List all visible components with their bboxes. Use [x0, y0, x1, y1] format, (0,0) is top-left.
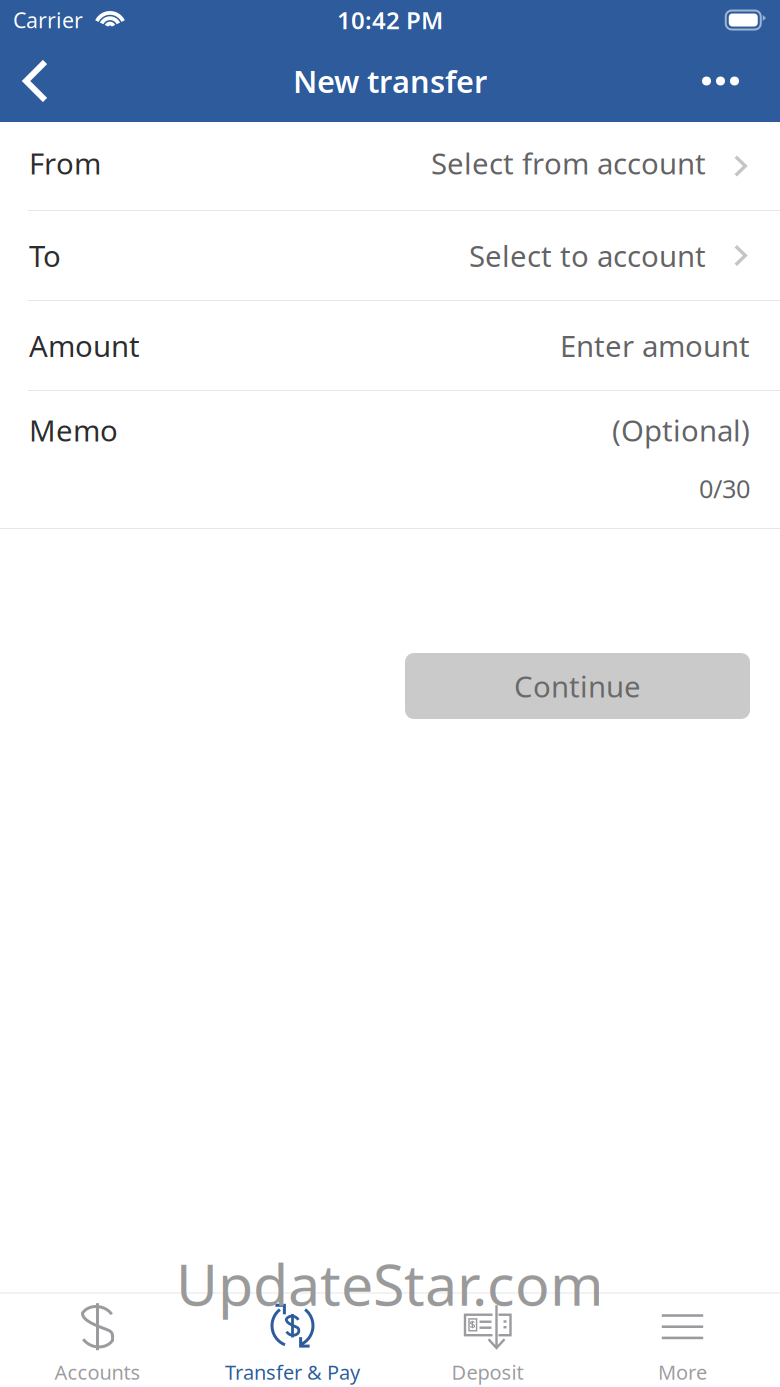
staticText: Select from account [431, 143, 706, 182]
staticText: Transfer & Pay [225, 1359, 360, 1385]
staticText: Enter amount [560, 326, 750, 365]
button[interactable]: Back [0, 40, 74, 122]
button[interactable]: From [0, 122, 780, 210]
staticText: UpdateStar.com [176, 1245, 604, 1322]
button[interactable]: Accounts [0, 1293, 195, 1387]
staticText: Deposit [451, 1359, 523, 1385]
button[interactable]: To [0, 211, 780, 300]
staticText: 10:42 PM [337, 4, 443, 36]
button[interactable]: More options [676, 40, 780, 122]
staticText: New transfer [293, 61, 487, 101]
staticText: (Optional) [612, 410, 750, 449]
button[interactable]: Memo [0, 391, 780, 528]
staticText: To [29, 236, 61, 275]
button[interactable]: More [585, 1293, 780, 1387]
button[interactable]: Transfer & Pay [195, 1293, 390, 1387]
button[interactable]: Amount [0, 301, 780, 390]
staticText: Amount [29, 326, 140, 365]
staticText: From [29, 143, 101, 182]
button[interactable]: Deposit [390, 1293, 585, 1387]
button[interactable]: Continue [405, 653, 750, 719]
staticText: Memo [29, 410, 118, 449]
staticText: More [658, 1359, 707, 1385]
staticText: Accounts [54, 1359, 140, 1385]
staticText: Continue [514, 666, 641, 705]
staticText: 0/30 [699, 472, 750, 505]
staticText: Select to account [469, 236, 706, 275]
staticText: Carrier [13, 6, 83, 34]
